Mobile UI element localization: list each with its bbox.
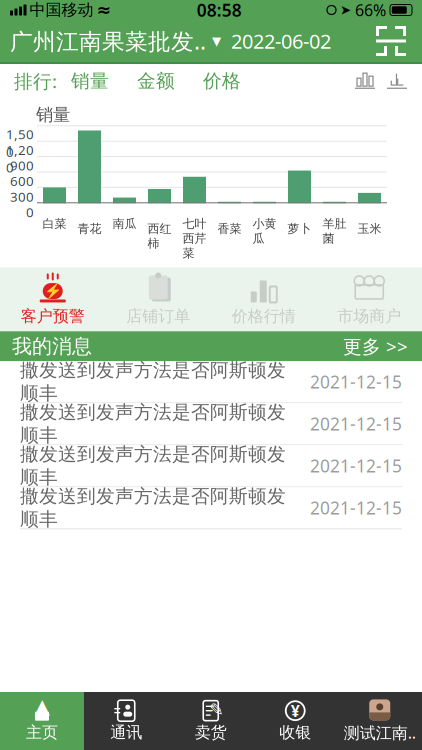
- staticText: 西红柿: [147, 221, 171, 251]
- staticText: 2022-06-02: [231, 28, 331, 54]
- staticText: 客户预警: [21, 306, 85, 326]
- button[interactable]: ✎: [168, 692, 253, 750]
- button[interactable]: 价格: [189, 64, 255, 97]
- staticText: 66%: [355, 0, 386, 21]
- button[interactable]: 撒发送到发声方法是否阿斯顿发顺丰: [0, 445, 422, 487]
- staticText: ➤: [340, 2, 351, 17]
- button[interactable]: ▲: [0, 692, 84, 750]
- button[interactable]: 更多 >>: [343, 328, 422, 365]
- staticText: ⚡: [44, 283, 62, 299]
- staticText: 价格行情: [232, 306, 296, 326]
- staticText: 香菜: [217, 221, 241, 236]
- button[interactable]: Line chart view: [376, 71, 422, 91]
- staticText: ≈: [96, 0, 111, 20]
- staticText: 通讯: [110, 723, 142, 742]
- staticText: 2021-12-15: [310, 454, 402, 477]
- staticText: 萝卜: [287, 221, 311, 236]
- staticText: 广州江南果菜批发..: [10, 26, 206, 56]
- staticText: 撒发送到发声方法是否阿斯顿发顺丰: [20, 359, 286, 405]
- staticText: 青花: [77, 221, 101, 236]
- staticText: 撒发送到发声方法是否阿斯顿发顺丰: [20, 485, 286, 531]
- staticText: 撒发送到发声方法是否阿斯顿发顺丰: [20, 401, 286, 447]
- staticText: 排行:: [14, 69, 57, 93]
- staticText: 1,500: [6, 125, 34, 161]
- staticText: 2021-12-15: [310, 370, 402, 393]
- button[interactable]: Bar chart view: [354, 71, 376, 91]
- staticText: 价格: [203, 69, 241, 92]
- staticText: 七叶西芹菜: [182, 216, 206, 260]
- staticText: 玉米: [357, 221, 381, 236]
- button[interactable]: Scan: [374, 24, 422, 58]
- staticText: 卖货: [195, 723, 227, 742]
- staticText: 1,200: [6, 141, 34, 176]
- staticText: 店铺订单: [126, 306, 190, 326]
- staticText: 我的消息: [12, 334, 92, 359]
- staticText: 2021-12-15: [310, 412, 402, 435]
- staticText: 更多 >>: [343, 334, 408, 359]
- button[interactable]: ⚡: [0, 264, 105, 334]
- staticText: 羊肚菌: [322, 216, 346, 246]
- staticText: 销量: [36, 104, 70, 125]
- button[interactable]: 通讯: [84, 692, 168, 750]
- staticText: 金额: [137, 69, 175, 92]
- button[interactable]: 金额: [123, 64, 189, 97]
- staticText: 测试江南..: [344, 722, 416, 743]
- staticText: ¥: [291, 700, 300, 721]
- staticText: ▼: [212, 34, 221, 48]
- staticText: 市场商户: [337, 306, 401, 326]
- button[interactable]: 测试江南..: [337, 692, 422, 750]
- button[interactable]: 撒发送到发声方法是否阿斯顿发顺丰: [0, 487, 422, 529]
- staticText: 0: [26, 203, 34, 221]
- staticText: 白菜: [42, 216, 66, 231]
- button[interactable]: 广州江南果菜批发..: [0, 18, 221, 64]
- button[interactable]: 销量: [57, 64, 123, 97]
- staticText: 中国移动: [29, 0, 93, 20]
- staticText: 300: [10, 188, 34, 205]
- button[interactable]: 撒发送到发声方法是否阿斯顿发顺丰: [0, 361, 422, 403]
- button[interactable]: 价格行情: [211, 264, 316, 334]
- staticText: 主页: [26, 723, 58, 742]
- staticText: 小黄瓜: [252, 216, 276, 246]
- staticText: 收银: [279, 723, 311, 742]
- staticText: 撒发送到发声方法是否阿斯顿发顺丰: [20, 443, 286, 489]
- staticText: 2021-12-15: [310, 496, 402, 519]
- button[interactable]: 撒发送到发声方法是否阿斯顿发顺丰: [0, 403, 422, 445]
- staticText: ✎: [209, 700, 224, 719]
- staticText: 08:58: [197, 0, 242, 21]
- staticText: 销量: [71, 69, 109, 92]
- staticText: 南瓜: [112, 216, 136, 231]
- staticText: ▲: [34, 695, 49, 717]
- button[interactable]: 市场商户: [316, 264, 422, 334]
- button[interactable]: ¥: [253, 692, 337, 750]
- staticText: 900: [10, 156, 34, 174]
- staticText: 600: [10, 172, 34, 190]
- button[interactable]: 店铺订单: [105, 264, 211, 334]
